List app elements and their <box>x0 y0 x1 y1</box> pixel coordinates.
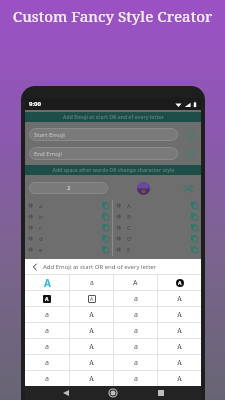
staticText: A <box>178 280 182 287</box>
staticText: a <box>45 374 49 384</box>
button[interactable]: a <box>25 307 69 322</box>
button[interactable]: A <box>70 323 113 338</box>
staticText: A <box>89 326 94 336</box>
staticText: a <box>45 326 49 336</box>
staticText: C <box>127 224 131 232</box>
button[interactable]: A <box>158 355 201 370</box>
staticText: B <box>127 213 131 221</box>
button[interactable]: a <box>25 200 112 211</box>
button[interactable]: E <box>113 244 201 255</box>
staticText: A <box>177 326 182 336</box>
button[interactable]: D <box>113 233 201 244</box>
button[interactable]: Home <box>106 386 120 400</box>
button[interactable]: A <box>158 275 201 290</box>
button[interactable]: A <box>158 291 201 306</box>
staticText: End Emoji <box>34 150 62 158</box>
staticText: A <box>89 310 94 320</box>
staticText: Add Emoji at start OR end of every lette… <box>63 114 164 121</box>
staticText: a <box>134 374 138 384</box>
button[interactable]: a <box>70 275 113 290</box>
button[interactable]: A <box>25 275 69 290</box>
staticText: b <box>39 213 43 221</box>
staticText: A <box>89 358 94 368</box>
staticText: A <box>177 310 182 320</box>
button[interactable]: A <box>25 291 69 306</box>
button[interactable]: A <box>114 275 157 290</box>
button[interactable]: Pick emoji <box>183 127 197 141</box>
button[interactable]: A <box>158 323 201 338</box>
button[interactable]: Shuffle <box>179 179 197 197</box>
button[interactable]: a <box>25 355 69 370</box>
staticText: A <box>177 342 182 352</box>
staticText: a <box>134 358 138 368</box>
staticText: A <box>44 276 51 290</box>
button[interactable]: Back <box>29 261 40 272</box>
button[interactable]: A <box>158 371 201 386</box>
staticText: A <box>89 342 94 352</box>
staticText: a <box>134 310 138 320</box>
staticText: a <box>45 310 49 320</box>
button[interactable]: Emoji <box>136 181 151 196</box>
button[interactable]: Back <box>25 259 201 274</box>
staticText: D <box>127 235 132 243</box>
staticText: a <box>134 294 138 304</box>
button[interactable]: A <box>70 355 113 370</box>
button[interactable]: Back <box>59 386 73 400</box>
button[interactable]: Start Emoji <box>29 128 178 141</box>
button[interactable]: A <box>70 371 113 386</box>
staticText: c <box>39 224 42 232</box>
staticText: A <box>89 374 94 384</box>
button[interactable]: a <box>114 355 157 370</box>
button[interactable]: A <box>70 339 113 354</box>
staticText: A <box>177 294 182 304</box>
staticText: A <box>90 296 94 303</box>
button[interactable]: b <box>25 211 112 222</box>
staticText: A <box>177 358 182 368</box>
staticText: 2 <box>67 184 71 192</box>
button[interactable]: a <box>114 371 157 386</box>
button[interactable]: a <box>114 339 157 354</box>
staticText: a <box>134 342 138 352</box>
button[interactable]: End Emoji <box>29 147 178 160</box>
staticText: a <box>90 278 94 288</box>
button[interactable]: A <box>70 291 113 306</box>
button[interactable]: Pick emoji <box>183 146 197 160</box>
button[interactable]: A <box>158 307 201 322</box>
staticText: A <box>177 374 182 384</box>
staticText: a <box>45 358 49 368</box>
button[interactable]: C <box>113 222 201 233</box>
staticText: 9:00 <box>29 100 41 108</box>
button[interactable]: a <box>114 323 157 338</box>
button[interactable]: a <box>25 371 69 386</box>
staticText: Add space after words OR change characte… <box>52 167 175 174</box>
staticText: Start Emoji <box>34 131 65 139</box>
button[interactable]: a <box>114 291 157 306</box>
button[interactable]: A <box>70 307 113 322</box>
button[interactable]: a <box>25 339 69 354</box>
staticText: a <box>134 326 138 336</box>
staticText: A <box>127 202 131 210</box>
button[interactable]: B <box>113 211 201 222</box>
staticText: E <box>127 246 131 254</box>
staticText: d <box>39 235 43 243</box>
button[interactable]: d <box>25 233 112 244</box>
button[interactable]: c <box>25 222 112 233</box>
button[interactable]: a <box>25 323 69 338</box>
button[interactable]: A <box>113 200 201 211</box>
button[interactable]: Recents <box>154 386 168 400</box>
staticText: A <box>45 296 49 303</box>
staticText: e <box>39 246 43 254</box>
staticText: Add Emoji at start OR end of every lette… <box>43 263 157 271</box>
button[interactable]: a <box>114 307 157 322</box>
button[interactable]: 2 <box>29 182 108 194</box>
button[interactable]: A <box>158 339 201 354</box>
staticText: Custom Fancy Style Creator <box>0 6 225 26</box>
staticText: a <box>45 342 49 352</box>
button[interactable]: e <box>25 244 112 255</box>
staticText: a <box>39 202 43 210</box>
staticText: A <box>133 278 138 288</box>
